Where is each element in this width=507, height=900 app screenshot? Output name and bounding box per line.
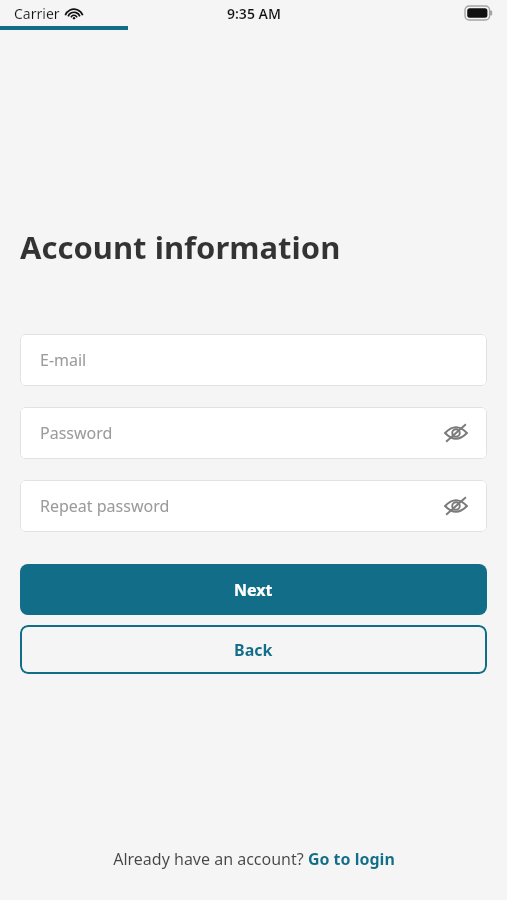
staticText: Password	[40, 422, 113, 444]
button[interactable]: Show password	[439, 416, 473, 450]
staticText: Next	[234, 579, 273, 601]
button[interactable]: Back	[20, 625, 487, 674]
staticText: Account information	[20, 226, 341, 268]
button[interactable]: Password	[20, 407, 487, 459]
button[interactable]: Already have an account? Go to login	[0, 848, 507, 900]
staticText: Back	[234, 639, 273, 661]
staticText: Carrier	[14, 4, 60, 23]
staticText: Repeat password	[40, 495, 170, 517]
button[interactable]: Show password	[439, 489, 473, 523]
staticText: E-mail	[40, 349, 87, 371]
staticText: Already have an account? Go to login	[113, 848, 395, 870]
staticText: 9:35 AM	[227, 4, 281, 23]
button[interactable]: E-mail	[20, 334, 487, 386]
button[interactable]: Repeat password	[20, 480, 487, 532]
button[interactable]: Next	[20, 564, 487, 615]
